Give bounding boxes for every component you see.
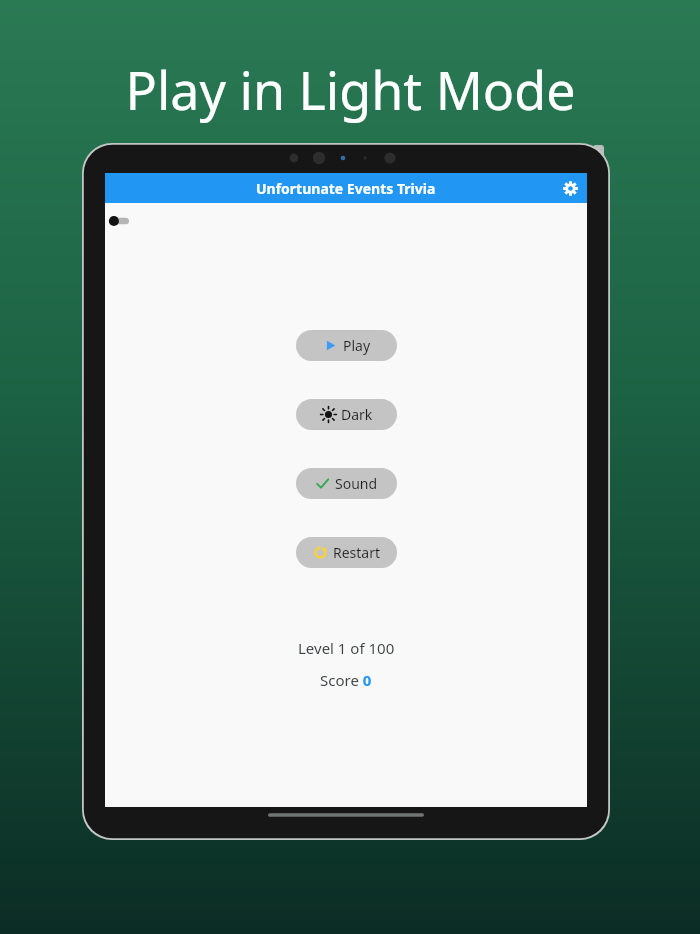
- button[interactable]: Dark: [296, 399, 397, 430]
- staticText: Play: [343, 336, 371, 355]
- staticText: Level 1 of 100: [298, 638, 395, 658]
- button[interactable]: Toggle: [108, 214, 132, 228]
- button[interactable]: Play: [296, 330, 397, 361]
- staticText: Score 0: [320, 670, 372, 690]
- staticText: Play in Light Mode: [125, 54, 576, 125]
- staticText: Unfortunate Events Trivia: [256, 179, 436, 198]
- button[interactable]: Restart: [296, 537, 397, 568]
- staticText: Sound: [335, 474, 378, 493]
- button[interactable]: Sound: [296, 468, 397, 499]
- staticText: Restart: [333, 543, 381, 562]
- staticText: Dark: [341, 405, 373, 424]
- button[interactable]: Settings: [558, 176, 582, 200]
